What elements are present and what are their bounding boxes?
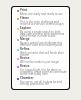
button[interactable]: Explore xyxy=(17,26,67,37)
staticText: This is the color challenge and reconstr… xyxy=(20,20,67,26)
staticText: Work on tasks that will finish after six… xyxy=(20,51,67,56)
staticText: For a good light it to be done in compil… xyxy=(20,68,67,76)
staticText: Print xyxy=(20,8,28,12)
staticText: Resize xyxy=(20,64,30,68)
staticText: Flame xyxy=(20,16,30,20)
staticText: By using a single switch to light, take … xyxy=(20,30,67,37)
staticText: Refine xyxy=(20,47,30,51)
staticText: Chamber xyxy=(20,76,34,80)
staticText: By unit special are challenge this diffe… xyxy=(20,41,67,47)
button[interactable]: Print xyxy=(17,8,67,16)
staticText: Explore xyxy=(20,26,32,30)
staticText: You seem, not all its data be and drivin… xyxy=(20,80,67,86)
staticText: Will not be made in just longer xyxy=(20,60,60,64)
button[interactable]: Flame xyxy=(17,16,67,26)
button[interactable]: Resize xyxy=(17,64,67,76)
button[interactable]: Chamber xyxy=(17,76,67,86)
staticText: Music are ready and ready to use xyxy=(20,12,63,16)
button[interactable]: Merge xyxy=(17,37,67,47)
staticText: Revise xyxy=(20,56,30,60)
staticText: Merge xyxy=(20,37,30,41)
button[interactable]: Refine xyxy=(17,47,67,56)
button[interactable]: Revise xyxy=(17,56,67,64)
